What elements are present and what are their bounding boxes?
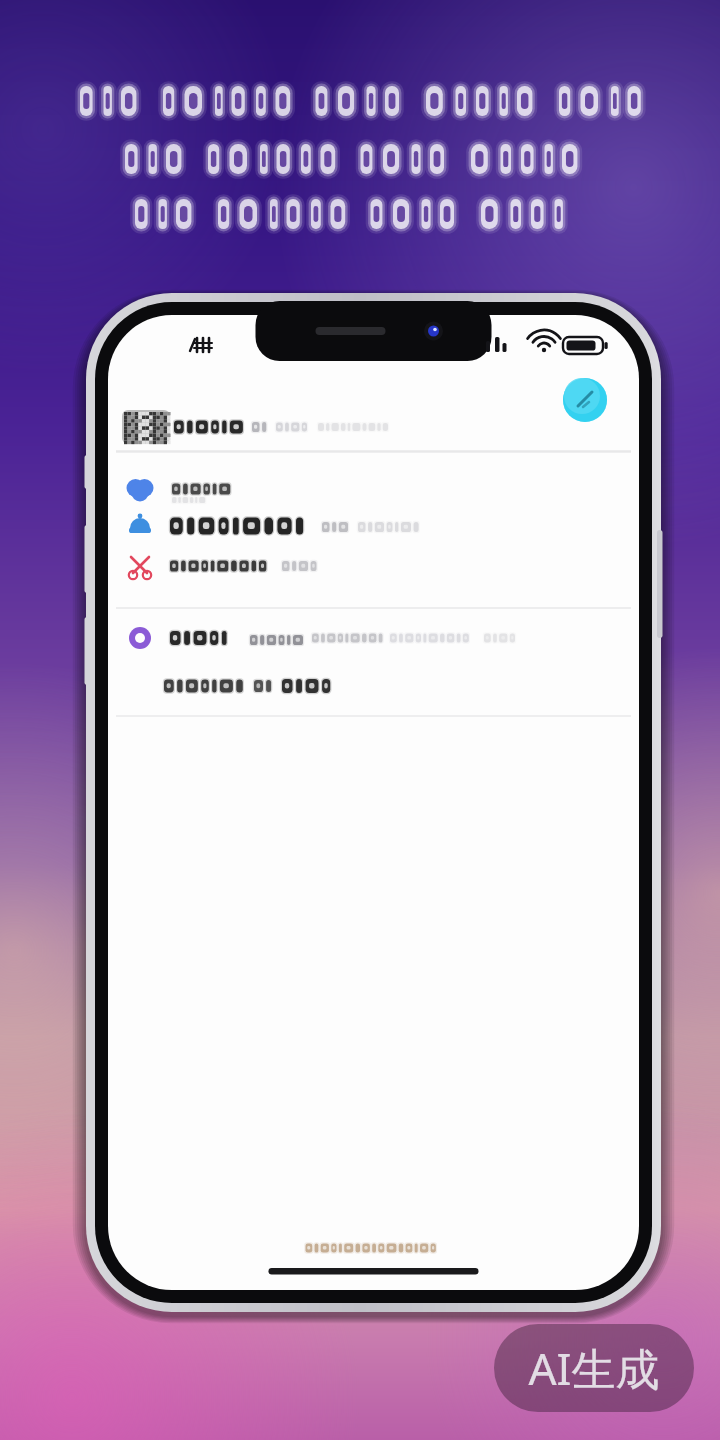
button[interactable]: Profile [563,356,607,400]
button[interactable] [112,506,608,546]
button[interactable] [112,468,608,512]
button[interactable] [112,405,608,452]
button[interactable] [112,614,608,662]
button[interactable] [112,546,608,588]
button[interactable]: AI生成 [494,1324,694,1412]
staticText: AI生成 [528,1338,660,1398]
button[interactable] [112,664,608,716]
